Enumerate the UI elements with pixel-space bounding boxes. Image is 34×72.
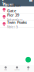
- staticText: Market St: [7, 25, 18, 29]
- staticText: Embarcadero: [7, 18, 23, 22]
- staticText: ▮▮▮: [29, 0, 32, 2]
- button[interactable]: Golden Gate: [0, 7, 34, 13]
- staticText: Saved: [14, 69, 19, 71]
- button[interactable]: Me: [23, 65, 34, 72]
- button[interactable]: Saved: [11, 65, 23, 72]
- staticText: Pier 39: [7, 12, 19, 18]
- staticText: San Francisco: [7, 14, 23, 17]
- staticText: Places: [2, 1, 13, 7]
- staticText: Twin Peaks: [7, 19, 27, 25]
- staticText: Me: [27, 69, 29, 71]
- staticText: Golden Gate: [7, 3, 21, 13]
- button[interactable]: Add place: [25, 57, 31, 62]
- staticText: 9:41: [2, 0, 5, 5]
- button[interactable]: Twin Peaks: [0, 21, 34, 28]
- button[interactable]: Pier 39: [0, 14, 34, 20]
- button[interactable]: Map: [0, 65, 11, 72]
- staticText: Map: [4, 69, 7, 71]
